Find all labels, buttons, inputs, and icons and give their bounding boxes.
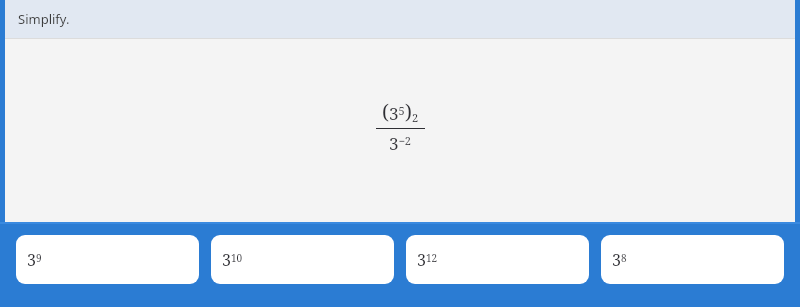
staticText: 38 [612,249,627,271]
button[interactable]: 39 [16,235,199,284]
staticText: 39 [27,249,42,271]
button[interactable]: 310 [211,235,394,284]
button[interactable]: 312 [406,235,589,284]
staticText: ) [405,98,412,125]
staticText: 2 [412,110,419,125]
staticText: 310 [222,249,243,271]
button[interactable]: 38 [601,235,784,284]
staticText: 35 [389,102,405,125]
staticText: Simplify. [18,10,70,28]
staticText: 312 [417,249,438,271]
staticText: ( [382,98,389,125]
staticText: 3−2 [389,132,412,155]
